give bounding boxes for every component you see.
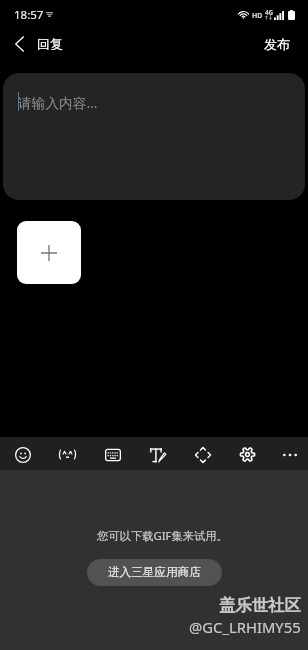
button[interactable]: Add image <box>17 221 81 284</box>
button[interactable]: 请输入内容... <box>3 73 305 200</box>
staticText: HD <box>252 11 263 21</box>
button[interactable]: Emoji <box>6 438 39 471</box>
button[interactable]: 进入三星应用商店 <box>87 559 222 586</box>
button[interactable]: 发布 <box>248 28 308 60</box>
button[interactable]: Settings <box>231 438 264 471</box>
staticText: @GC_LRHIMY55 <box>189 617 301 637</box>
staticText: 4G <box>265 8 274 17</box>
staticText: 您可以下载GIF集来试用。 <box>97 528 228 543</box>
button[interactable]: Text style <box>141 438 174 471</box>
staticText: 18:57 <box>14 7 44 23</box>
staticText: 进入三星应用商店 <box>108 565 201 580</box>
button[interactable]: Kaomoji <box>51 438 84 471</box>
staticText: 发布 <box>264 36 290 52</box>
staticText: 请输入内容... <box>18 93 98 112</box>
button[interactable]: More <box>273 438 306 471</box>
staticText: 盖乐世社区 <box>219 595 301 616</box>
staticText: 回复 <box>37 36 63 52</box>
button[interactable]: Keyboard <box>96 438 129 471</box>
button[interactable]: Resize <box>186 438 219 471</box>
button[interactable]: Back <box>2 27 36 61</box>
